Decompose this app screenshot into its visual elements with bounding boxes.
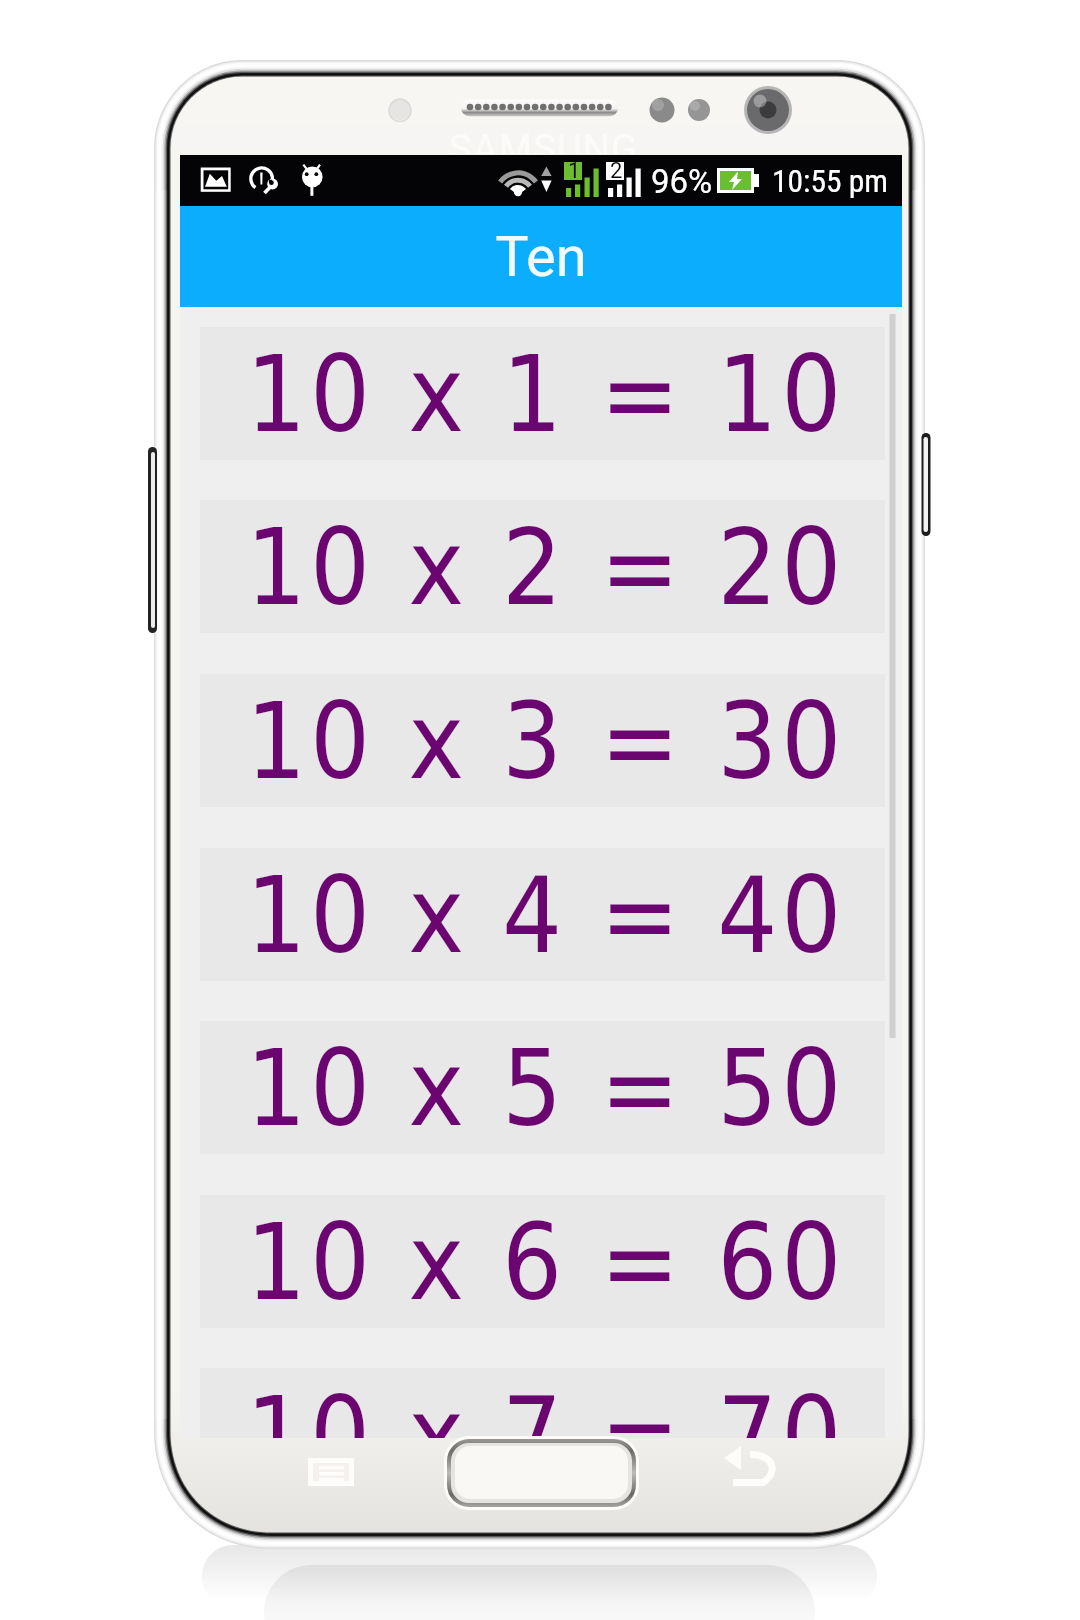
button[interactable]: 10 x 7 = 70: [200, 1368, 885, 1438]
staticText: 10 x 1 = 10: [246, 334, 846, 456]
staticText: 10 x 3 = 30: [246, 681, 846, 803]
staticText: 2: [610, 158, 623, 184]
button[interactable]: Back: [706, 1436, 798, 1508]
button[interactable]: 10 x 1 = 10: [200, 327, 885, 460]
button[interactable]: 10 x 6 = 60: [200, 1195, 885, 1328]
button[interactable]: Ten: [180, 206, 902, 307]
staticText: 10 x 7 = 70: [246, 1375, 846, 1438]
button[interactable]: 10 x 5 = 50: [200, 1021, 885, 1154]
button[interactable]: 10 x 3 = 30: [200, 674, 885, 807]
staticText: 10 x 5 = 50: [246, 1028, 846, 1150]
button[interactable]: Menu: [285, 1436, 377, 1508]
button[interactable]: 10 x 4 = 40: [200, 848, 885, 981]
staticText: Ten: [495, 224, 587, 290]
staticText: 1: [568, 158, 581, 184]
button[interactable]: 10 x 2 = 20: [200, 500, 885, 633]
staticText: 10 x 6 = 60: [246, 1202, 846, 1324]
button[interactable]: Home: [447, 1439, 636, 1507]
staticText: 10 x 4 = 40: [246, 855, 846, 977]
staticText: 96%: [651, 162, 713, 201]
staticText: 10 x 2 = 20: [246, 507, 846, 629]
staticText: 10:55 pm: [772, 163, 889, 200]
